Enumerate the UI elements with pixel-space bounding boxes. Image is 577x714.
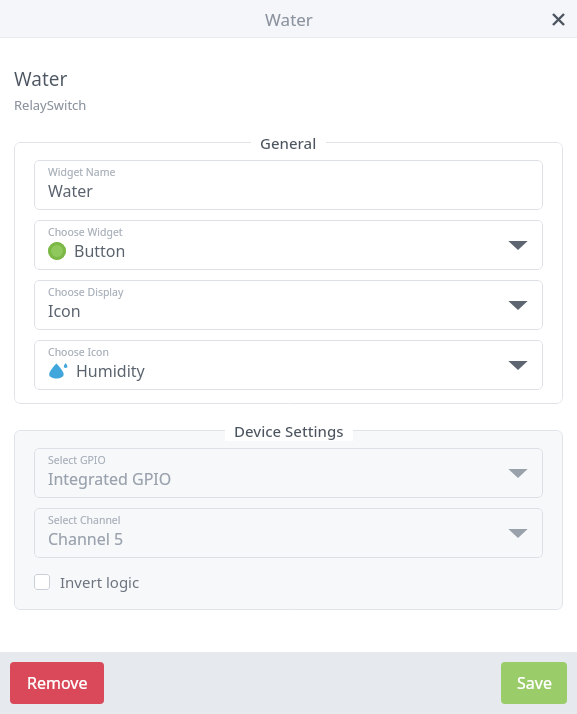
staticText: Water: [265, 8, 313, 31]
button[interactable]: Widget Name: [34, 160, 543, 210]
staticText: Humidity: [76, 360, 145, 382]
staticText: General: [260, 133, 317, 153]
staticText: RelaySwitch: [14, 96, 87, 114]
staticText: Remove: [27, 672, 88, 694]
staticText: Save: [517, 672, 552, 694]
staticText: Select GPIO: [48, 453, 106, 467]
staticText: Channel 5: [48, 528, 124, 550]
staticText: Water: [14, 66, 68, 92]
staticText: Select Channel: [48, 513, 121, 527]
staticText: Widget Name: [48, 165, 116, 179]
button[interactable]: Close: [539, 0, 577, 38]
staticText: Icon: [48, 300, 81, 322]
button[interactable]: Choose Widget: [34, 220, 543, 270]
button[interactable]: Choose Display: [34, 280, 543, 330]
button[interactable]: Choose Icon: [34, 340, 543, 390]
staticText: Water: [48, 180, 93, 202]
button[interactable]: Invert logic: [34, 570, 543, 594]
staticText: Device Settings: [234, 421, 344, 441]
button[interactable]: Select Channel: [34, 508, 543, 558]
button[interactable]: Select GPIO: [34, 448, 543, 498]
staticText: Invert logic: [60, 572, 140, 592]
staticText: Choose Widget: [48, 225, 123, 239]
button[interactable]: Remove: [10, 662, 104, 704]
button[interactable]: Save: [501, 662, 567, 704]
staticText: Choose Icon: [48, 345, 109, 359]
staticText: Button: [74, 240, 126, 262]
staticText: Integrated GPIO: [48, 468, 172, 490]
staticText: Choose Display: [48, 285, 124, 299]
